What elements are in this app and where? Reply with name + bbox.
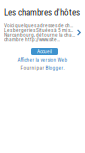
staticText: Fourni par <box>20 65 45 71</box>
button[interactable]: Afficher la version Web <box>0 57 85 63</box>
button[interactable]: Accueil <box>31 48 58 55</box>
staticText: chambre http://www.site... <box>4 36 60 42</box>
button[interactable]: Blogger <box>45 65 63 71</box>
staticText: Blogger <box>45 65 63 71</box>
staticText: Afficher la version Web <box>17 57 67 63</box>
staticText: Narcanbourg, détourne la chambre double <box>4 32 75 38</box>
staticText: Les chambres d'hôtes <box>4 7 80 18</box>
staticText: Accueil <box>37 48 52 55</box>
staticText: Les bergeries Situées à 5 mi sur la rout… <box>4 27 75 33</box>
button[interactable]: Voici quelques adresses de chambres d'hô… <box>0 22 85 43</box>
staticText: Voici quelques adresses de chambres d'hô… <box>4 22 75 29</box>
